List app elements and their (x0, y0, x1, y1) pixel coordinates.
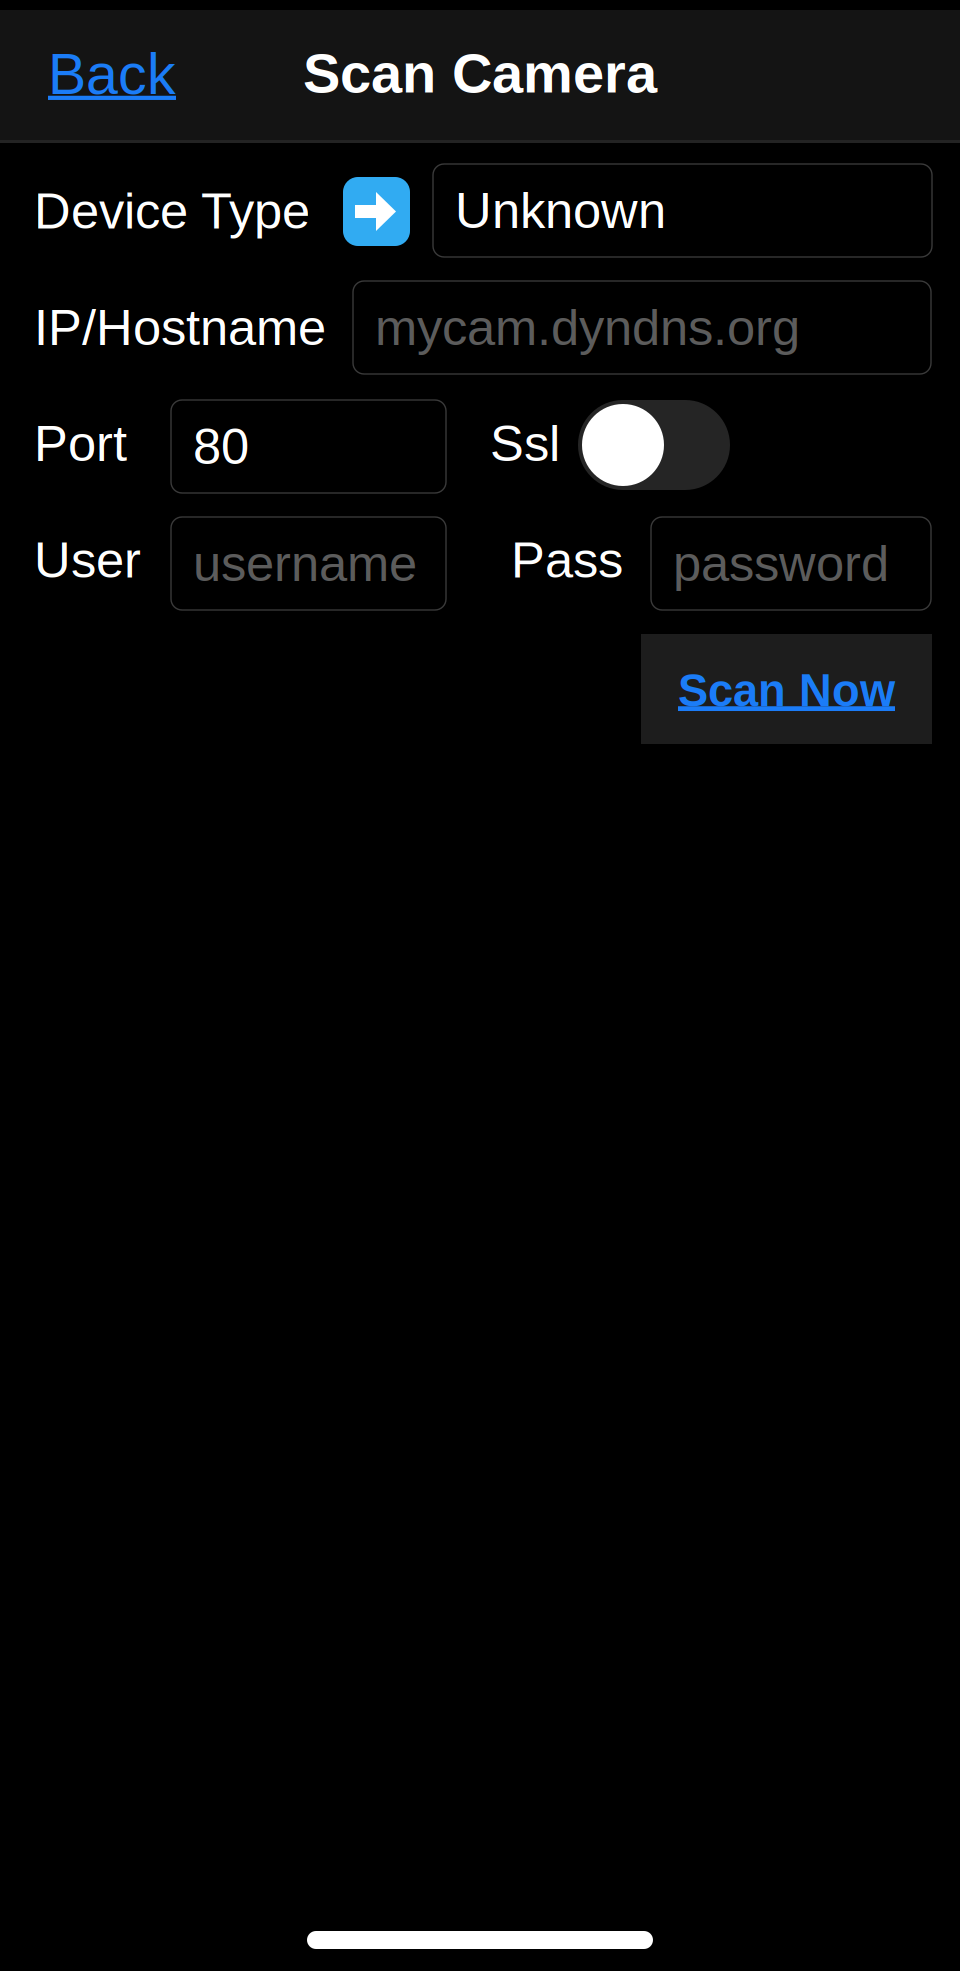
staticText: username (193, 535, 417, 592)
staticText: User (34, 532, 141, 588)
button[interactable]: Unknown (433, 164, 932, 257)
staticText: Scan Camera (303, 42, 657, 104)
staticText: Ssl (490, 415, 560, 472)
staticText: Device Type (34, 183, 310, 239)
button[interactable]: password (651, 517, 931, 610)
staticText: IP/Hostname (34, 299, 326, 356)
staticText: Port (34, 415, 127, 472)
staticText: password (673, 535, 889, 592)
button[interactable]: mycam.dyndns.org (353, 281, 931, 374)
button[interactable]: Back (48, 36, 248, 112)
button[interactable]: 80 (171, 400, 446, 493)
button[interactable]: Choose device type (343, 177, 410, 246)
staticText: Back (48, 42, 176, 106)
staticText: Pass (511, 532, 623, 588)
staticText: mycam.dyndns.org (375, 299, 800, 356)
staticText: Scan Now (678, 665, 895, 716)
staticText: Unknown (455, 182, 666, 239)
staticText: 80 (193, 418, 249, 475)
button[interactable]: Ssl (578, 400, 730, 490)
button[interactable]: Scan Now (641, 634, 932, 744)
button[interactable]: username (171, 517, 446, 610)
